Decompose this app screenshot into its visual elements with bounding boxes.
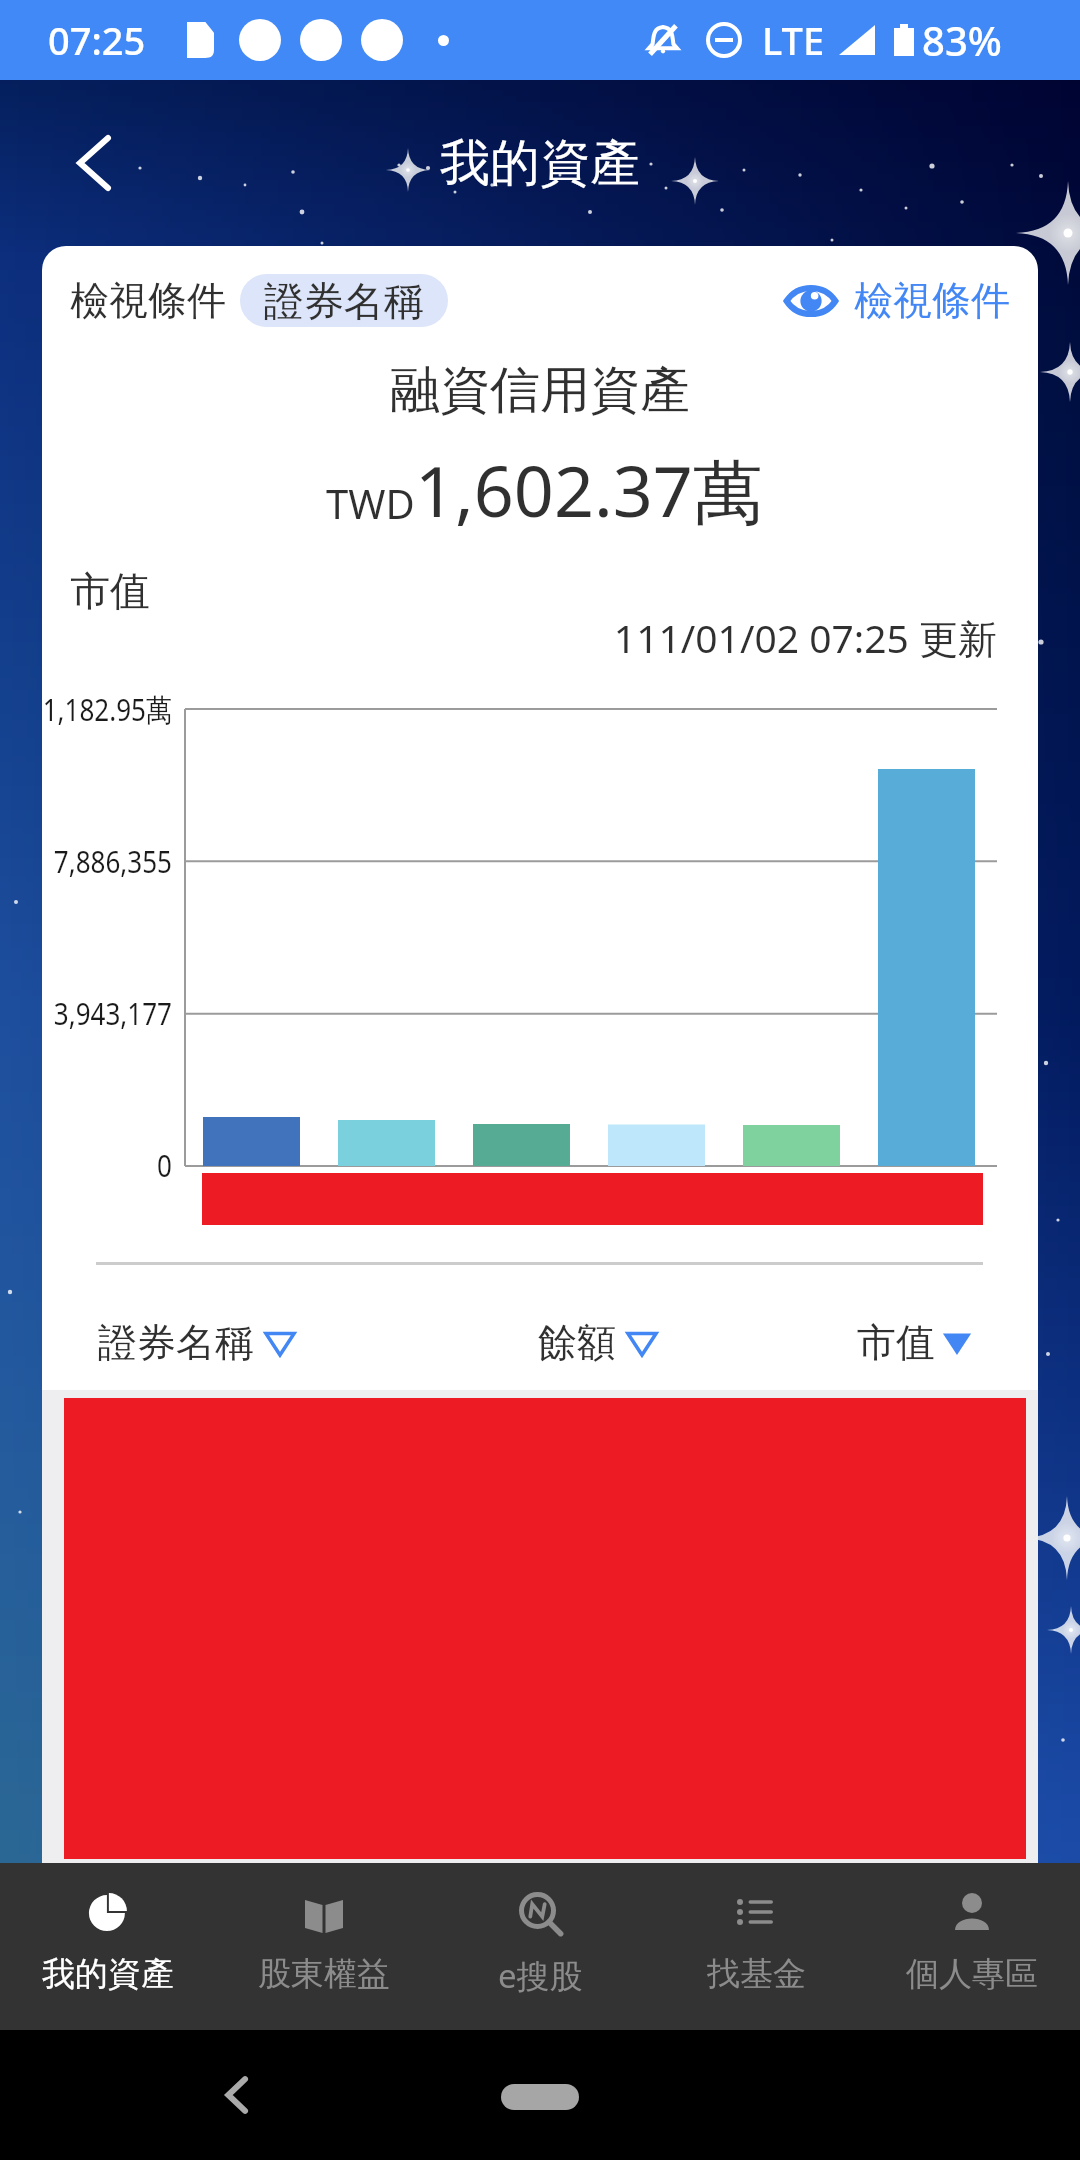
staticText: TWD [326,476,415,530]
button[interactable]: 找基金 [648,1863,864,2030]
button[interactable]: 我的資產 [0,1863,216,2030]
staticText: 0 [42,1144,172,1186]
staticText: 餘額 [538,1318,616,1367]
staticText: e搜股 [498,1953,583,1998]
staticText: 找基金 [707,1953,806,1995]
staticText: 我的資產 [440,132,640,195]
staticText: 我的資產 [42,1953,174,1995]
staticText: 111/01/02 07:25 更新 [42,611,997,664]
staticText: 7,886,355 [42,840,172,882]
staticText: 證券名稱 [264,276,424,326]
button[interactable]: 檢視條件 [785,276,1010,325]
button[interactable]: 證券名稱 [98,1317,296,1367]
staticText: 3,943,177 [42,992,172,1034]
other: Notifications silenced [645,23,681,57]
staticText: 檢視條件 [854,276,1010,325]
staticText: 證券名稱 [98,1318,254,1367]
staticText: 1,602.37萬 [415,442,763,538]
staticText: 83% [922,13,1002,67]
button[interactable]: Home [501,2084,579,2110]
staticText: 市值 [70,566,150,616]
staticText: LTE [762,14,825,66]
staticText: 07:25 [48,14,146,66]
staticText: 股東權益 [258,1953,390,1995]
button[interactable]: Back [208,2065,268,2125]
staticText: 檢視條件 [70,276,226,325]
button[interactable]: Back [56,125,132,201]
button[interactable]: 市值 [857,1317,973,1367]
staticText: 融資信用資產 [42,359,1038,422]
button[interactable]: 餘額 [538,1317,658,1367]
staticText: 市值 [857,1318,935,1367]
staticText: 1,182.95萬 [42,688,172,730]
button[interactable]: 證券名稱 [240,274,448,327]
staticText: 個人專區 [906,1953,1038,1995]
button[interactable]: 股東權益 [216,1863,432,2030]
button[interactable]: 個人專區 [864,1863,1080,2030]
button[interactable]: e搜股 [432,1863,648,2030]
